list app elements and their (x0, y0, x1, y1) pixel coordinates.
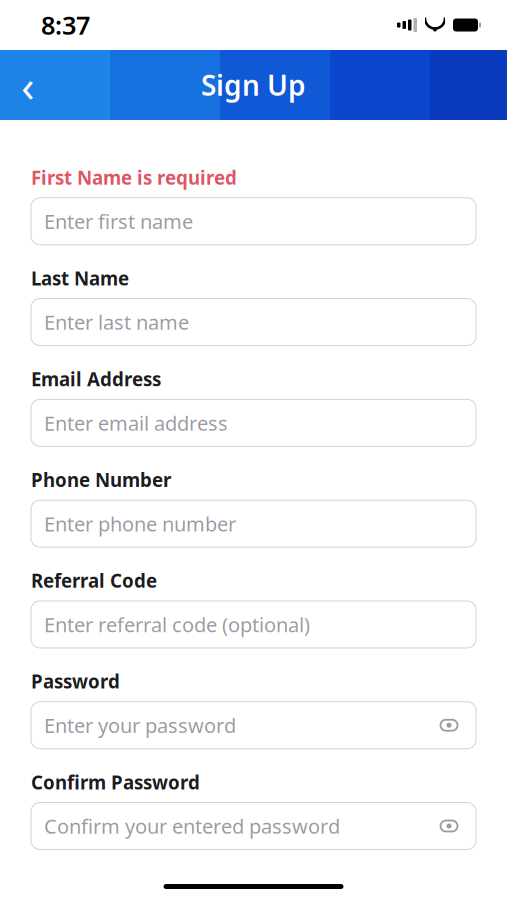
button[interactable]: Back (0, 50, 56, 120)
staticText: Phone Number (31, 467, 171, 492)
button[interactable]: Enter phone number (31, 500, 476, 547)
staticText: Confirm your entered password (44, 813, 340, 839)
button[interactable]: Enter referral code (optional) (31, 601, 476, 648)
staticText: ‹ (21, 56, 35, 114)
staticText: Referral Code (31, 568, 157, 593)
staticText: Password (31, 669, 120, 694)
staticText: You must accept our terms and conditions… (71, 871, 444, 900)
staticText: Last Name (31, 266, 129, 291)
staticText: Enter last name (44, 309, 189, 335)
staticText: Sign Up (201, 66, 306, 104)
button[interactable]: Enter last name (31, 299, 476, 346)
staticText: First Name is required (31, 165, 237, 190)
button[interactable]: You must accept our terms and conditions… (31, 871, 476, 900)
staticText: Enter your password (44, 712, 236, 739)
staticText: Enter first name (44, 208, 193, 235)
staticText: Email Address (31, 367, 161, 391)
staticText: Enter email address (44, 410, 228, 436)
button[interactable]: Enter email address (31, 399, 476, 446)
button[interactable]: Confirm your entered password (31, 802, 476, 849)
button[interactable]: Enter your password (31, 702, 476, 749)
staticText: Enter referral code (optional) (44, 611, 310, 638)
button[interactable]: Enter first name (31, 198, 476, 245)
staticText: Confirm Password (31, 770, 200, 794)
staticText: Enter phone number (44, 510, 236, 537)
staticText: 8:37 (41, 8, 90, 42)
